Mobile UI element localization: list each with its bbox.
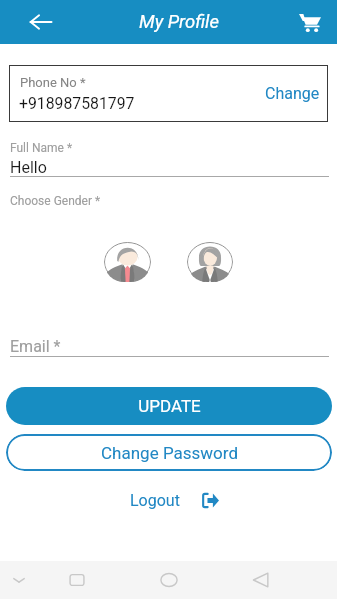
button[interactable]: Back — [247, 566, 275, 594]
button[interactable]: Change Password — [6, 434, 332, 471]
staticText: Logout — [130, 491, 180, 510]
button[interactable]: Cart — [293, 5, 327, 39]
button[interactable]: Male — [104, 242, 151, 282]
staticText: +918987581797 — [19, 94, 135, 113]
button[interactable]: Back — [24, 5, 58, 39]
button[interactable]: Phone No * — [9, 65, 328, 122]
button[interactable]: UPDATE — [6, 387, 332, 425]
staticText: Change Password — [101, 443, 238, 463]
button[interactable]: Logout — [124, 487, 225, 514]
staticText: Change — [265, 84, 320, 103]
staticText: UPDATE — [138, 396, 201, 416]
button[interactable]: Home — [155, 566, 183, 594]
staticText: Choose Gender * — [10, 194, 101, 208]
staticText: Full Name * — [10, 141, 73, 155]
staticText: Hello — [10, 158, 47, 177]
button[interactable]: Female — [187, 242, 233, 282]
staticText: My Profile — [139, 11, 219, 33]
button[interactable]: Change — [265, 84, 320, 103]
staticText: Email * — [10, 337, 61, 356]
button[interactable]: Hide keyboard — [5, 566, 33, 594]
staticText: Phone No * — [20, 75, 86, 90]
button[interactable]: Recents — [63, 566, 91, 594]
